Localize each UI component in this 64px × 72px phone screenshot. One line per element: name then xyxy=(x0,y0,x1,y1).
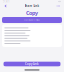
staticText: 9:41 xyxy=(3,0,10,3)
staticText: Copy xyxy=(26,9,38,17)
button[interactable]: More xyxy=(56,4,60,8)
staticText: Share Link xyxy=(24,4,39,8)
staticText: scuttle.app/s/9fQx2 xyxy=(24,19,40,21)
staticText: Copy Link xyxy=(25,62,39,66)
button[interactable]: Copy Link xyxy=(3,62,60,66)
button[interactable]: Back xyxy=(3,4,8,8)
button[interactable]: scuttle.app/s/9fQx2 xyxy=(2,17,62,23)
